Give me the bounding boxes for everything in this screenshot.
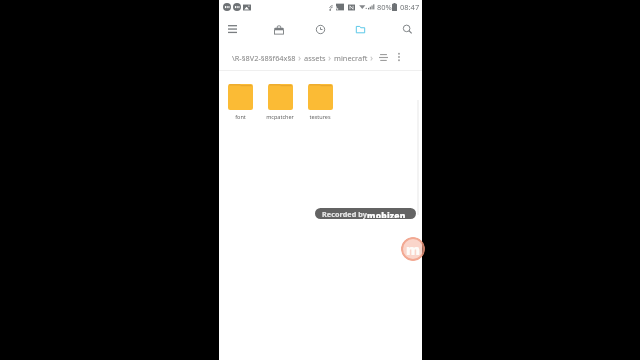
button[interactable]: Sort: [376, 50, 390, 64]
button[interactable]: Navigation menu: [217, 14, 247, 44]
staticText: 80%: [377, 2, 392, 12]
staticText: textures: [309, 113, 331, 120]
staticText: ›: [368, 52, 373, 64]
staticText: Recorded by: [322, 209, 367, 219]
button[interactable]: Apps: [264, 14, 294, 44]
button[interactable]: Search: [392, 14, 422, 44]
staticText: m: [406, 240, 420, 259]
button[interactable]: textures: [300, 84, 340, 120]
button[interactable]: Mobizen recorder: [401, 237, 425, 261]
staticText: ›: [296, 52, 304, 64]
staticText: 08:47: [400, 2, 420, 12]
staticText: mcpatcher: [266, 113, 294, 120]
staticText: minecraft: [334, 53, 368, 63]
staticText: \R-§8V2-§8§f64x§8: [232, 53, 296, 63]
staticText: ›: [326, 52, 334, 64]
button[interactable]: mcpatcher: [260, 84, 300, 120]
staticText: assets: [304, 53, 326, 63]
button[interactable]: font: [220, 84, 260, 120]
button[interactable]: More options: [392, 50, 406, 64]
staticText: mobizen: [367, 210, 406, 218]
staticText: font: [235, 113, 246, 120]
button[interactable]: Files: [345, 14, 375, 44]
button[interactable]: Recent files: [305, 14, 335, 44]
